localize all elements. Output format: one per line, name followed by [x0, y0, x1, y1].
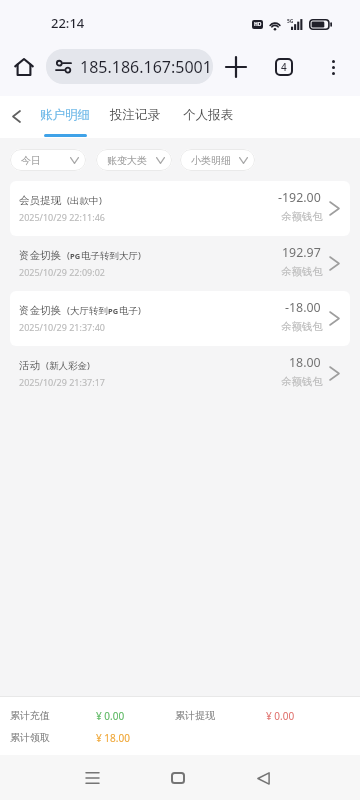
staticText: ¥ 0.00 [96, 709, 125, 723]
staticText: 个人报表 [183, 107, 233, 123]
button[interactable]: Tabs [266, 49, 302, 85]
staticText: 余额钱包 [281, 320, 323, 333]
staticText: ) [138, 249, 141, 262]
button[interactable]: Back [1, 95, 32, 137]
staticText: 累计领取 [10, 731, 50, 744]
staticText: ¥ 0.00 [266, 709, 295, 723]
staticText: 大厅转到 [70, 305, 108, 317]
staticText: 小类明细 [191, 154, 231, 167]
button[interactable]: 账变大类 [96, 149, 172, 171]
staticText: 余额钱包 [281, 375, 323, 388]
button[interactable]: New tab [218, 49, 254, 85]
staticText: 电子 [119, 305, 138, 317]
staticText: ¥ 18.00 [96, 731, 130, 745]
staticText: 投注记录 [110, 107, 160, 123]
staticText: 2025/10/29 21:37:17 [19, 376, 105, 388]
button[interactable]: Home [156, 756, 200, 800]
staticText: -18.00 [285, 299, 321, 316]
button[interactable]: 资金切换 [10, 236, 350, 291]
staticText: -192.00 [278, 189, 321, 206]
staticText: 2025/10/29 21:37:40 [19, 321, 105, 333]
staticText: 电子转到大厅 [81, 250, 138, 262]
staticText: 5G [287, 18, 294, 25]
staticText: 资金切换 [19, 304, 61, 317]
staticText: 会员提现 [19, 194, 61, 207]
button[interactable]: Back [241, 756, 285, 800]
staticText: ( [67, 194, 70, 207]
button[interactable]: 会员提现 [10, 181, 350, 236]
staticText: 累计充值 [10, 709, 50, 722]
button[interactable]: 今日 [10, 149, 86, 171]
staticText: 余额钱包 [281, 265, 323, 278]
staticText: 资金切换 [19, 249, 61, 262]
staticText: 出款中 [70, 195, 99, 207]
staticText: 2025/10/29 22:09:02 [19, 266, 105, 278]
staticText: ( [67, 304, 70, 317]
staticText: ) [138, 304, 141, 317]
button[interactable]: 活动 [10, 346, 350, 401]
staticText: ) [87, 359, 90, 372]
button[interactable]: 资金切换 [10, 291, 350, 346]
staticText: 累计提现 [175, 709, 215, 722]
staticText: ) [99, 194, 102, 207]
staticText: 新人彩金 [49, 360, 87, 372]
button[interactable]: 账户明细 [30, 96, 100, 138]
staticText: 活动 [19, 359, 40, 372]
button[interactable]: 小类明细 [180, 149, 255, 171]
staticText: 今日 [21, 154, 41, 167]
button[interactable]: Recent apps [70, 756, 114, 800]
staticText: 18.00 [289, 354, 321, 371]
staticText: 账户明细 [40, 107, 90, 123]
button[interactable]: More options [315, 49, 351, 85]
staticText: 余额钱包 [281, 210, 323, 223]
staticText: 192.97 [282, 244, 321, 261]
staticText: 账变大类 [107, 154, 147, 167]
staticText: 4 [281, 60, 287, 74]
staticText: HD [254, 21, 262, 28]
staticText: ( [46, 359, 49, 372]
staticText: PG [108, 306, 119, 316]
button[interactable]: 185.186.167:5001 [46, 49, 213, 84]
staticText: ( [67, 249, 70, 262]
staticText: 22:14 [51, 14, 85, 32]
staticText: 185.186.167:5001 [80, 56, 212, 78]
button[interactable]: Home [6, 49, 42, 85]
button[interactable]: 个人报表 [175, 96, 240, 138]
staticText: PG [70, 251, 81, 261]
staticText: 2025/10/29 22:11:46 [19, 211, 105, 223]
button[interactable]: 投注记录 [101, 96, 169, 138]
